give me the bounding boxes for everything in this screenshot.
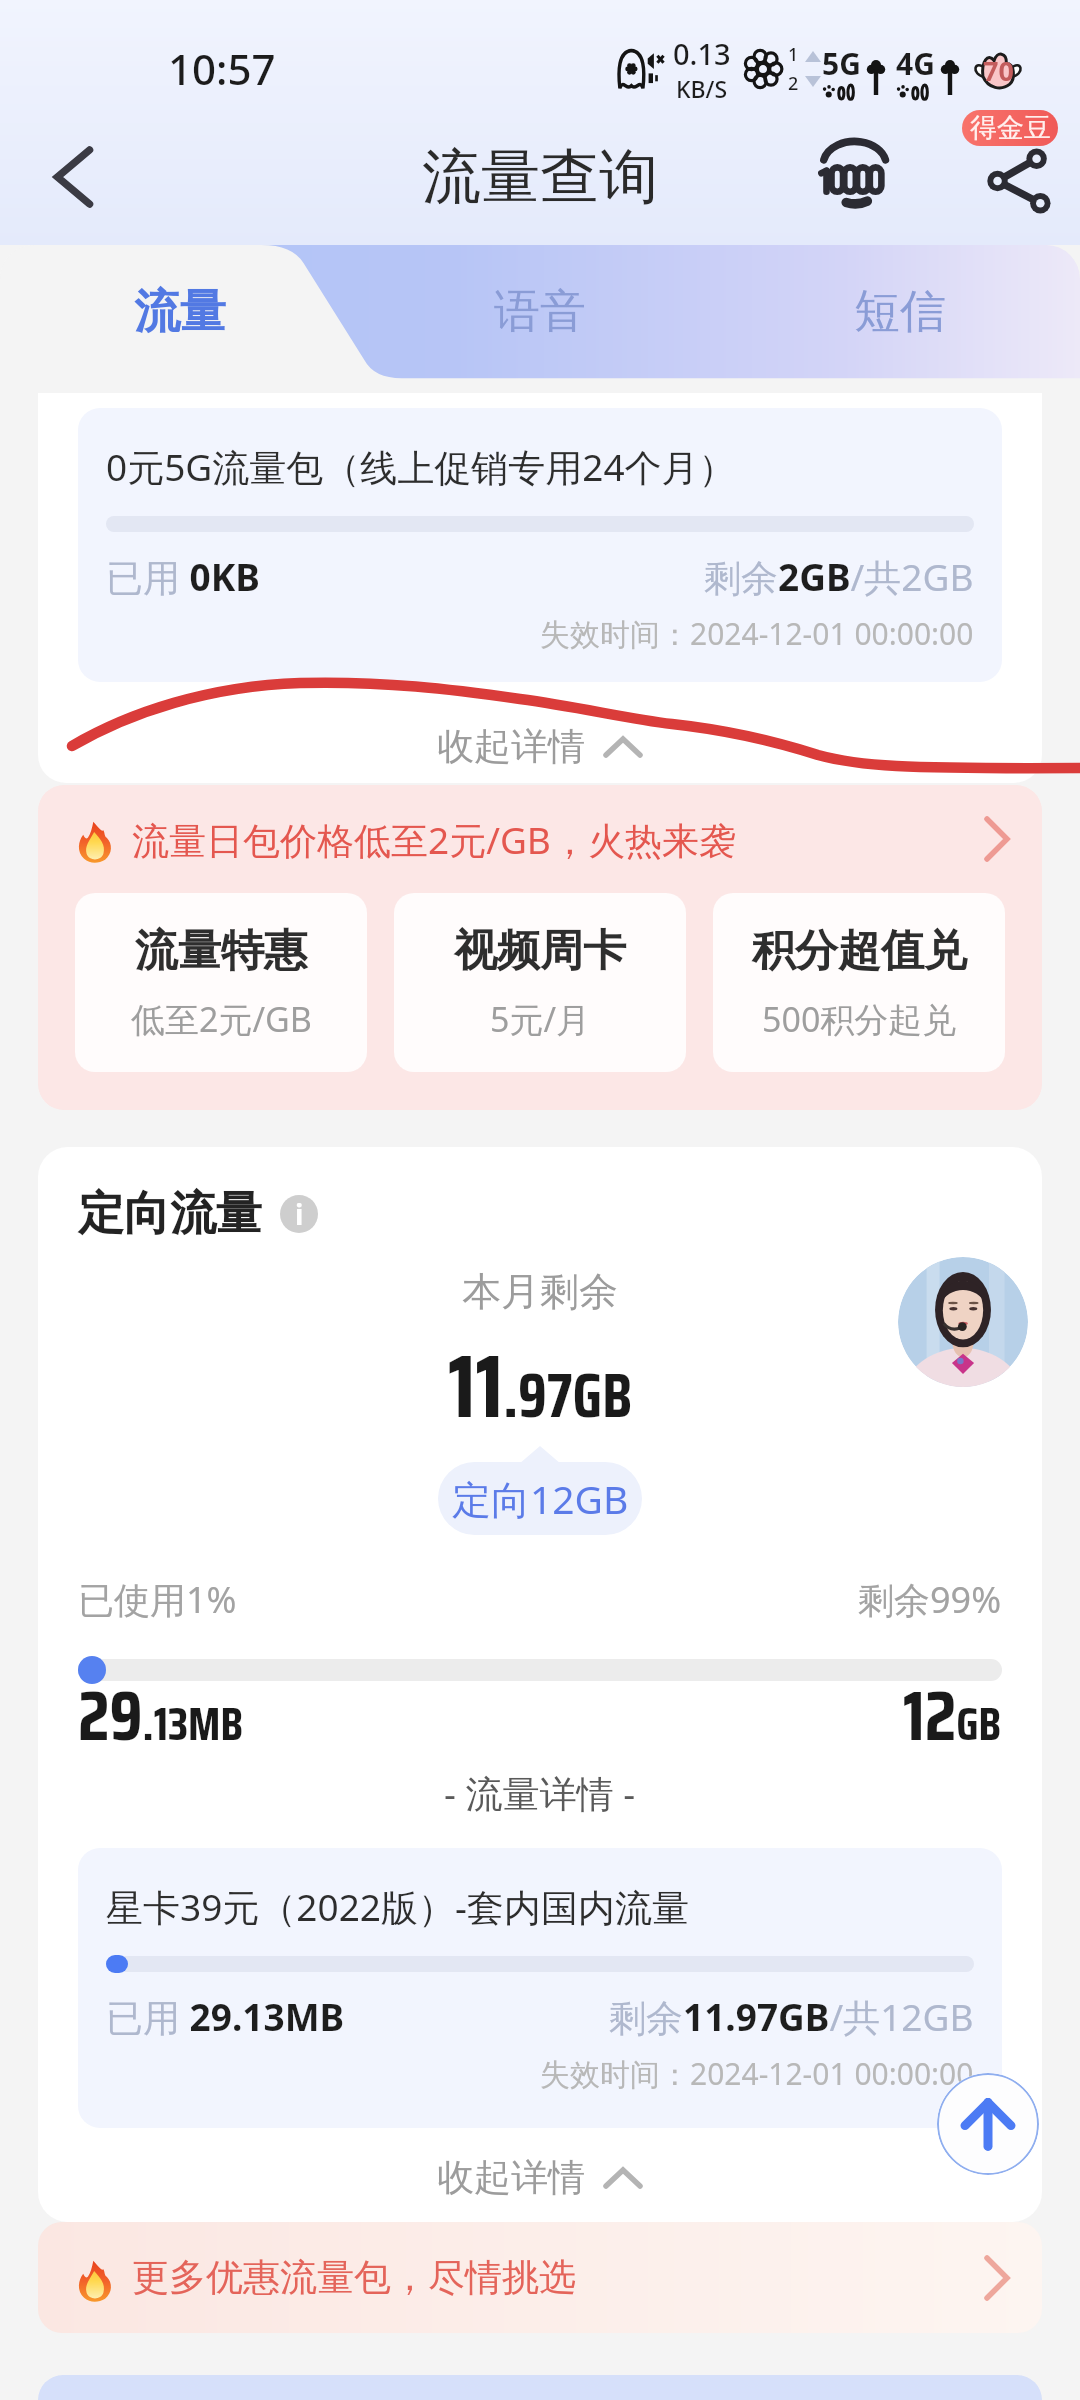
staticText: 5元/月 [490, 996, 591, 1042]
staticText: 流量查询 [422, 140, 658, 214]
staticText: 收起详情 [437, 723, 585, 770]
staticText: 29.13MB [78, 1661, 243, 1771]
staticText: 视频周卡 [454, 924, 626, 978]
button[interactable]: 积分超值兑 [713, 893, 1005, 1072]
staticText: 定向流量 [78, 1185, 262, 1243]
staticText: 短信 [854, 283, 946, 341]
button[interactable]: 视频周卡 [394, 893, 686, 1072]
staticText: 4G [896, 43, 935, 84]
staticText: 低至2元/GB [131, 996, 312, 1042]
staticText: 本月剩余 [462, 1267, 618, 1316]
staticText: KB/S [676, 73, 728, 104]
staticText: 剩余99% [858, 1575, 1002, 1624]
staticText: 流量日包价格低至2元/GB，火热来袭 [132, 814, 736, 865]
staticText: 失效时间：2024-12-01 00:00:00 [540, 613, 974, 654]
button[interactable]: Back [22, 131, 114, 223]
staticText: 0.13 [673, 34, 731, 73]
staticText: 10:57 [168, 40, 276, 97]
button[interactable]: 短信 [720, 245, 1080, 379]
staticText: - 流量详情 - [444, 1767, 636, 1818]
staticText: 已用 0KB [106, 551, 260, 602]
staticText: 5G [822, 43, 861, 84]
button[interactable]: 流量特惠 [75, 893, 367, 1072]
button[interactable]: 收起详情 [38, 705, 1042, 788]
staticText: 11.97GB [448, 1316, 632, 1456]
button[interactable]: Share [963, 130, 1059, 226]
staticText: 已用 29.13MB [106, 1991, 345, 2042]
staticText: 剩余11.97GB/共12GB [609, 1991, 974, 2042]
staticText: 流量 [134, 283, 226, 341]
staticText: 0元5G流量包（线上促销专用24个月） [106, 441, 736, 492]
button[interactable]: Customer service 10000 [808, 127, 904, 223]
staticText: 定向12GB [452, 1472, 629, 1525]
button[interactable]: Scroll to top [937, 2073, 1039, 2175]
staticText: 流量特惠 [135, 924, 307, 978]
staticText: 星卡39元（2022版）-套内国内流量 [106, 1881, 689, 1932]
button[interactable]: 流量日包价格低至2元/GB，火热来袭 [38, 785, 1042, 893]
staticText: 更多优惠流量包，尽情挑选 [132, 2254, 576, 2301]
staticText: 12GB [903, 1661, 1002, 1771]
staticText: 剩余2GB/共2GB [704, 551, 974, 602]
staticText: 500积分起兑 [762, 996, 957, 1042]
staticText: 2 [788, 71, 799, 96]
staticText: 已使用1% [78, 1575, 237, 1624]
staticText: 积分超值兑 [752, 924, 967, 978]
staticText: 收起详情 [437, 2154, 585, 2201]
staticText: i [295, 1195, 304, 1233]
button[interactable]: 语音 [360, 245, 720, 379]
staticText: 语音 [494, 283, 586, 341]
button[interactable]: 更多优惠流量包，尽情挑选 [38, 2222, 1042, 2333]
button[interactable]: 收起详情 [38, 2137, 1042, 2217]
button[interactable]: 流量 [0, 245, 360, 379]
staticText: 失效时间：2024-12-01 00:00:00 [540, 2053, 974, 2094]
staticText: 1 [788, 42, 799, 67]
staticText: 70 [983, 52, 1014, 89]
staticText: 得金豆 [970, 111, 1051, 145]
